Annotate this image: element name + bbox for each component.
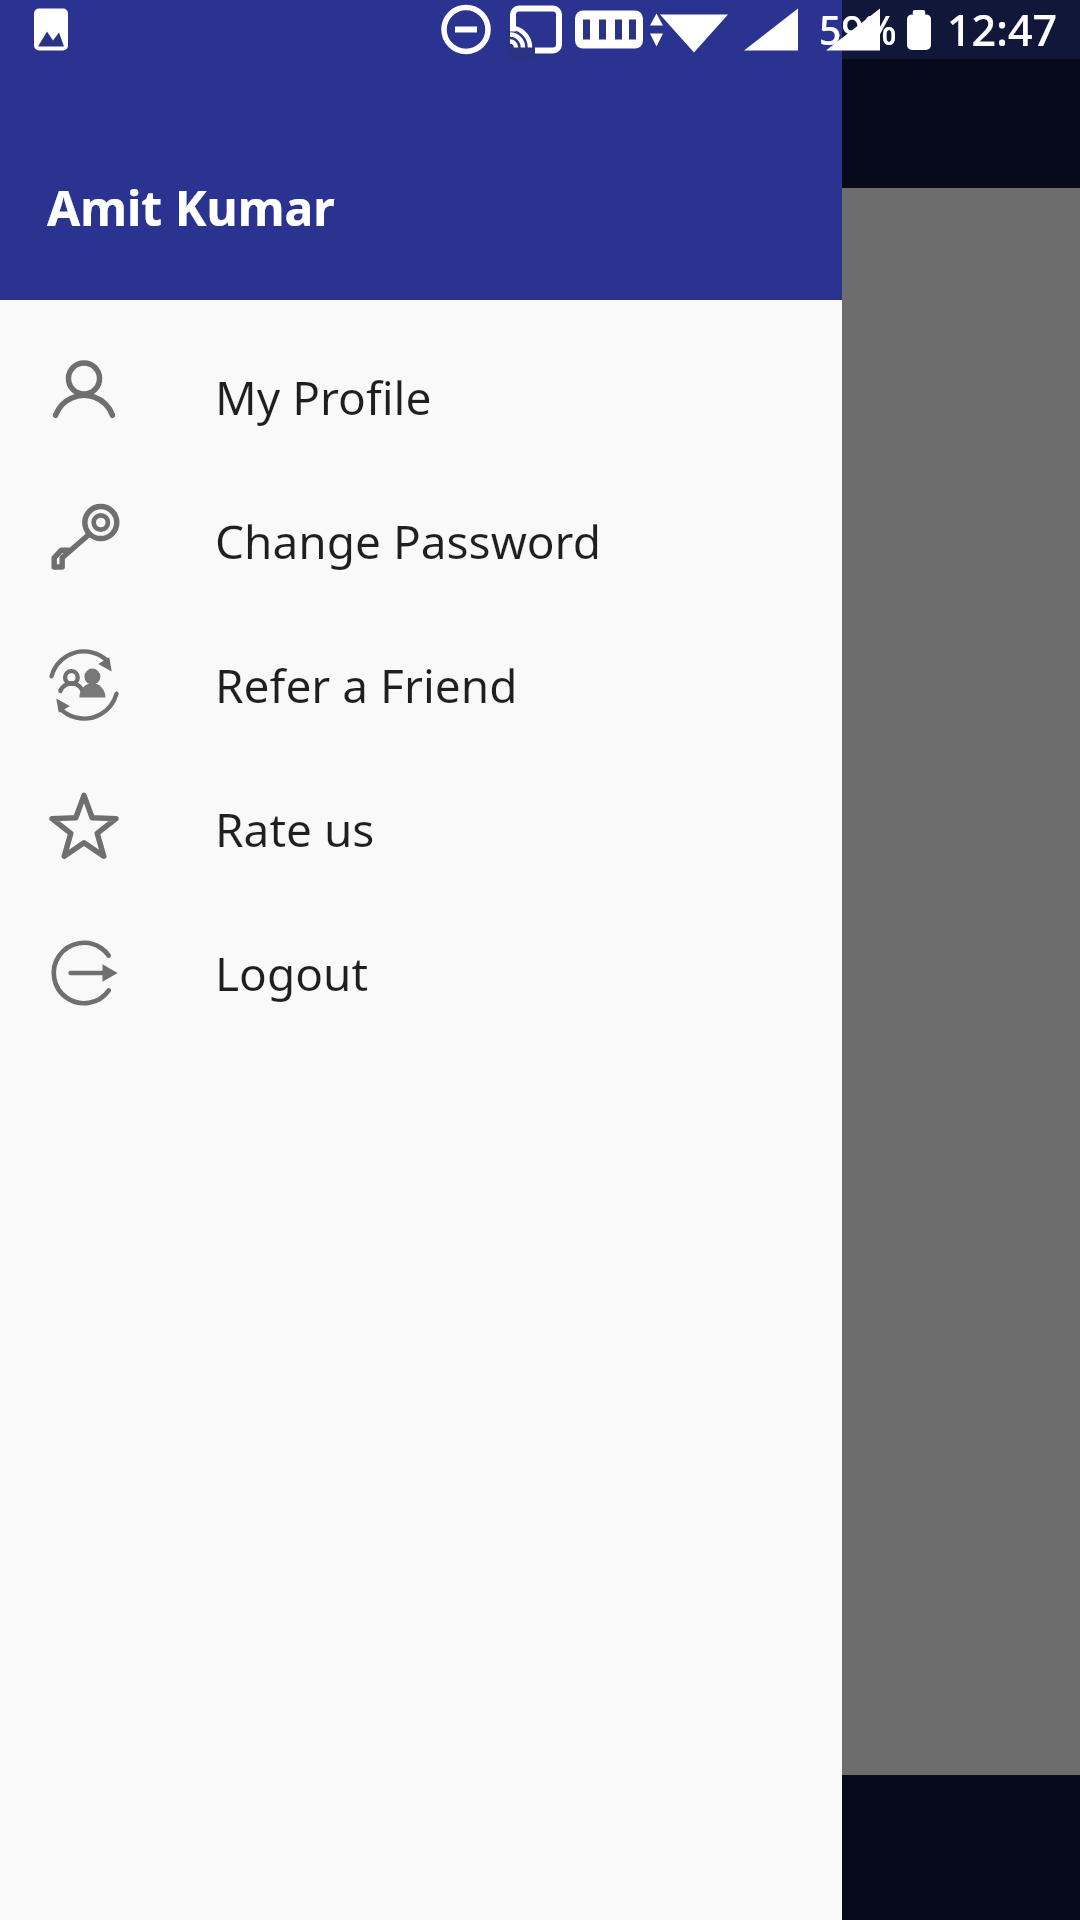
staticText: 12:47 — [947, 0, 1058, 59]
button[interactable]: Refer a Friend — [0, 613, 842, 757]
other: Logout — [0, 901, 215, 1045]
staticText: My Profile — [215, 366, 432, 429]
button[interactable]: Amit Kumar — [0, 0, 842, 300]
button[interactable]: Change Password — [0, 469, 842, 613]
other: Rate us — [0, 757, 215, 901]
button[interactable]: Logout — [0, 901, 842, 1045]
staticText: Logout — [215, 942, 369, 1005]
other: Change Password — [0, 469, 215, 613]
staticText: Refer a Friend — [215, 654, 518, 717]
staticText: 59% — [819, 3, 897, 56]
button[interactable]: My Profile — [0, 325, 842, 469]
button[interactable] — [600, 280, 780, 460]
staticText: Rate us — [215, 798, 375, 861]
other: My Profile — [0, 325, 215, 469]
other: Refer a Friend — [0, 613, 215, 757]
staticText: Change Password — [215, 510, 601, 573]
button[interactable]: Rate us — [0, 757, 842, 901]
staticText: Amit Kumar — [47, 175, 335, 240]
